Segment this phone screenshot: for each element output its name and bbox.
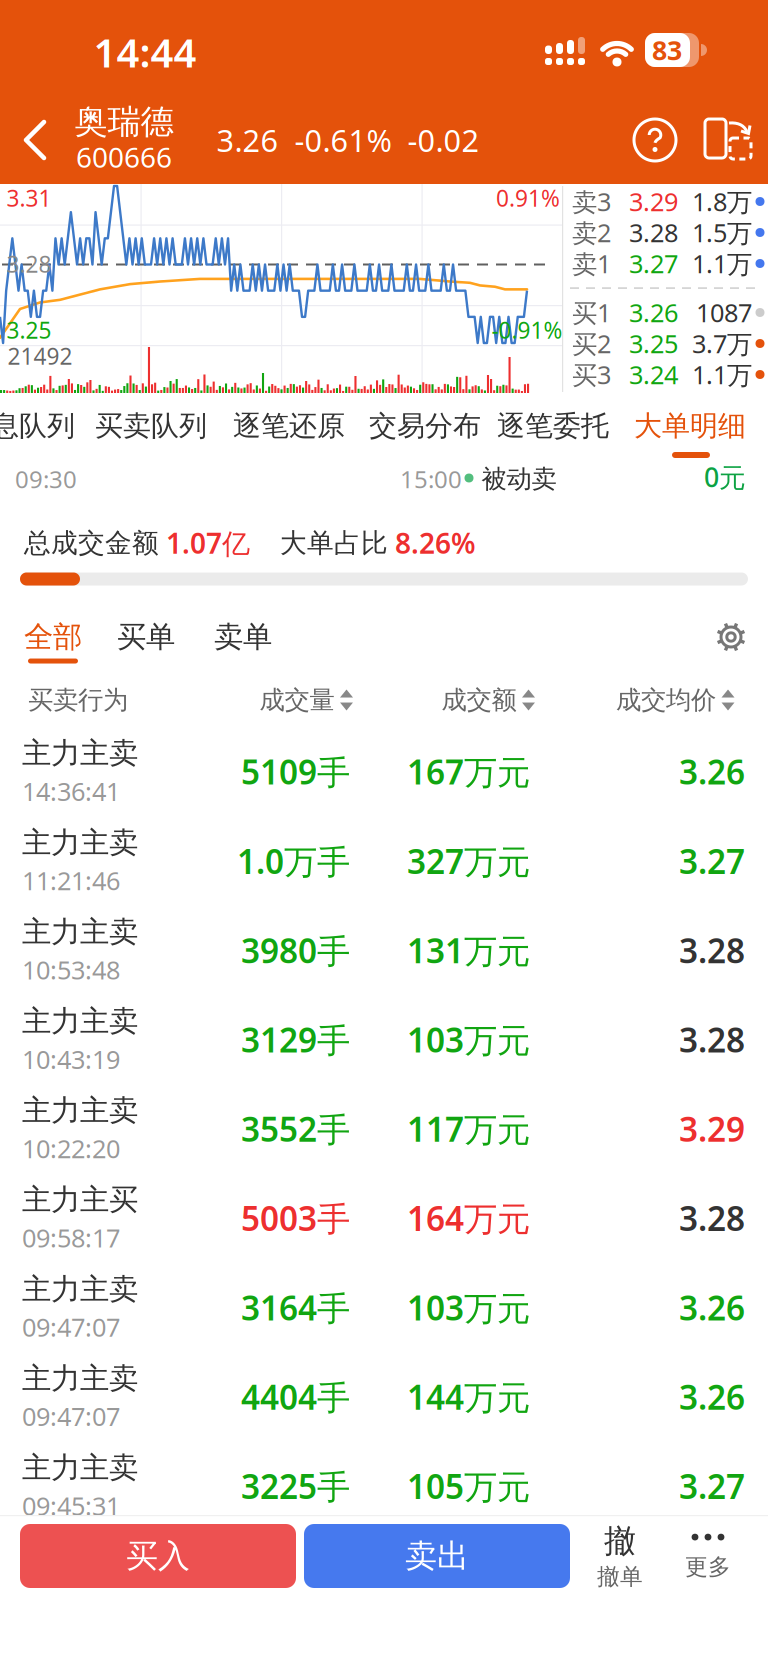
staticText: 主力主卖 (22, 1092, 138, 1128)
button[interactable]: 横屏 (703, 115, 755, 167)
staticText: 21492 (7, 341, 72, 371)
staticText: 14:36:41 (22, 774, 120, 808)
staticText: 撤单 (597, 1563, 643, 1590)
staticText: 105万元 (407, 1464, 530, 1508)
button[interactable]: 全部 (24, 619, 82, 655)
staticText: 买1 (572, 296, 611, 329)
staticText: 1087 (696, 296, 752, 329)
staticText: 卖3 (572, 185, 611, 218)
button[interactable]: 主力主卖 (0, 1441, 768, 1531)
staticText: 5003手 (241, 1196, 350, 1240)
button[interactable]: 买卖队列 (95, 409, 207, 443)
staticText: 卖1 (572, 247, 611, 280)
staticText: 买单 (117, 619, 175, 655)
staticText: 3.29 (629, 185, 678, 218)
staticText: 09:58:17 (22, 1221, 120, 1254)
staticText: 逐笔还原 (233, 409, 345, 443)
staticText: 1.8万 (692, 185, 752, 218)
button[interactable]: 主力主卖 (0, 816, 768, 906)
staticText: 10:53:48 (22, 953, 120, 986)
button[interactable]: 成交量 (259, 684, 354, 715)
staticText: 全部 (24, 619, 82, 655)
button[interactable]: 逐笔委托 (497, 409, 609, 443)
staticText: 主力主买 (22, 1182, 138, 1218)
staticText: 3.26 (679, 1375, 745, 1419)
staticText: 131万元 (407, 928, 530, 972)
staticText: 交易分布 (369, 409, 481, 443)
button[interactable]: 主力主卖 (0, 1084, 768, 1173)
button[interactable]: 卖出 (304, 1524, 570, 1588)
staticText: 3.28 (629, 216, 678, 249)
button[interactable]: 主力主买 (0, 1173, 768, 1263)
button[interactable]: 逐笔还原 (233, 409, 345, 443)
staticText: 09:45:31 (22, 1489, 120, 1522)
button[interactable]: 息队列 (0, 409, 75, 443)
staticText: 3225手 (241, 1464, 350, 1508)
button[interactable]: 设置 (711, 617, 751, 657)
staticText: 4404手 (241, 1375, 350, 1419)
staticText: 103万元 (407, 1285, 530, 1330)
staticText: 更多 (685, 1553, 731, 1581)
staticText: 逐笔委托 (497, 409, 609, 443)
button[interactable]: 撤 (570, 1523, 670, 1589)
staticText: 买入 (126, 1536, 190, 1576)
button[interactable]: 主力主卖 (0, 906, 768, 995)
staticText: 奥瑞德 (74, 101, 173, 142)
staticText: 主力主卖 (22, 1271, 138, 1307)
staticText: 3129手 (241, 1017, 350, 1062)
staticText: 327万元 (407, 839, 530, 883)
staticText: 117万元 (407, 1107, 530, 1151)
staticText: 0元 (704, 459, 746, 495)
button[interactable]: 买入 (20, 1524, 296, 1588)
staticText: 大单占比 (280, 527, 388, 559)
staticText: 总成交金额 (24, 527, 159, 559)
staticText: 3.29 (679, 1107, 745, 1151)
staticText: 1.1万 (692, 247, 752, 280)
button[interactable]: 返回 (13, 109, 57, 171)
staticText: 卖单 (214, 619, 272, 655)
staticText: -0.91% (491, 315, 562, 345)
staticText: 1.07亿 (166, 524, 250, 562)
staticText: 3.28 (679, 1017, 745, 1062)
staticText: 主力主卖 (22, 1450, 138, 1486)
staticText: 3.28 (679, 1196, 745, 1240)
staticText: 600666 (76, 138, 172, 176)
button[interactable]: 成交均价 (616, 684, 736, 715)
staticText: 主力主卖 (22, 825, 138, 861)
staticText: 买卖队列 (95, 409, 207, 443)
staticText: 撤 (604, 1521, 636, 1561)
staticText: 3.28 (6, 249, 51, 279)
staticText: 3.31 (6, 183, 51, 213)
button[interactable]: 大单明细 (634, 409, 746, 443)
button[interactable]: 主力主卖 (0, 1263, 768, 1352)
button[interactable]: 帮助 (631, 116, 679, 164)
staticText: 买卖行为 (28, 684, 128, 715)
staticText: 主力主卖 (22, 735, 138, 771)
staticText: 成交均价 (616, 684, 716, 715)
staticText: 144万元 (407, 1375, 530, 1419)
button[interactable]: 主力主卖 (0, 1352, 768, 1441)
staticText: 0.91% (496, 183, 560, 213)
staticText: 1.0万手 (237, 839, 350, 883)
button[interactable]: 买单 (117, 619, 175, 655)
staticText: 被动卖 (481, 463, 556, 494)
staticText: 3.25 (6, 315, 51, 345)
button[interactable]: 主力主卖 (0, 995, 768, 1084)
button[interactable]: 成交额 (441, 684, 536, 715)
staticText: 买2 (572, 327, 611, 360)
button[interactable]: 卖单 (214, 619, 272, 655)
button[interactable]: 更多 (670, 1523, 746, 1589)
staticText: 3.27 (629, 247, 678, 280)
button[interactable]: 主力主卖 (0, 727, 768, 816)
staticText: 3.7万 (692, 327, 752, 360)
staticText: 息队列 (0, 409, 75, 443)
staticText: 3.26 (629, 296, 678, 329)
staticText: 成交额 (441, 684, 516, 715)
staticText: 3.25 (629, 327, 678, 360)
staticText: 3.27 (679, 1464, 745, 1508)
staticText: 1.1万 (692, 358, 752, 391)
staticText: 167万元 (407, 749, 530, 794)
staticText: 10:22:20 (22, 1131, 120, 1165)
staticText: 5109手 (241, 749, 350, 794)
button[interactable]: 交易分布 (369, 409, 481, 443)
